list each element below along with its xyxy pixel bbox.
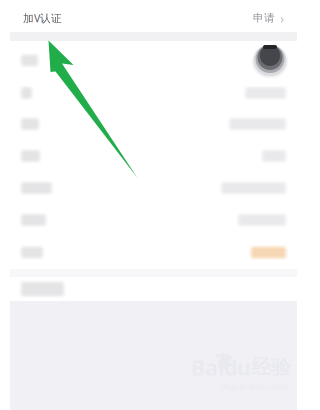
staticText: Bai — [191, 353, 224, 381]
button[interactable] — [10, 78, 297, 108]
button[interactable]: 申请 — [253, 9, 284, 27]
button[interactable] — [10, 140, 297, 172]
staticText: du — [224, 353, 251, 381]
button[interactable] — [10, 172, 297, 204]
staticText: 申请 — [253, 11, 275, 24]
staticText: 加V认证 — [23, 11, 62, 25]
button[interactable] — [10, 204, 297, 236]
button[interactable] — [10, 41, 297, 78]
button[interactable] — [10, 108, 297, 140]
staticText: › — [280, 9, 284, 27]
button[interactable] — [10, 277, 297, 301]
button[interactable] — [10, 236, 297, 269]
